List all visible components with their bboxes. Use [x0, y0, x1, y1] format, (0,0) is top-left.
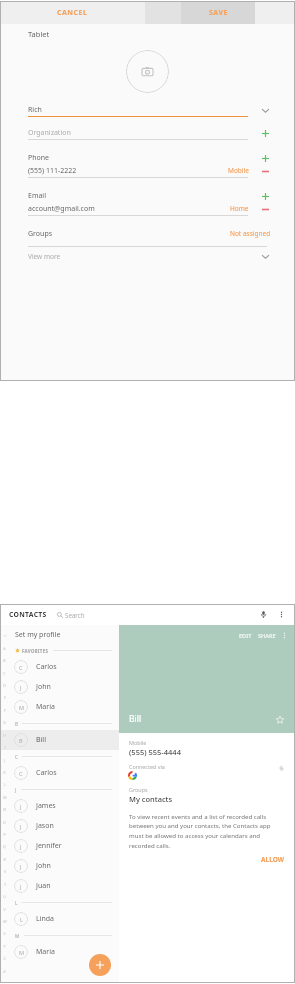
button[interactable]: C [0, 763, 119, 783]
button[interactable]: Set my profile [0, 625, 119, 644]
button[interactable]: Organization [0, 127, 295, 140]
button[interactable]: J [0, 816, 119, 836]
staticText: K [3, 770, 6, 775]
staticText: account@gmail.com [28, 204, 95, 214]
staticText: James [36, 801, 56, 811]
staticText: J [20, 843, 22, 850]
button[interactable]: Groups [119, 786, 295, 804]
button[interactable]: Add field [259, 152, 271, 164]
staticText: Linda [36, 914, 55, 924]
staticText: P [3, 832, 6, 837]
staticText: John [36, 682, 51, 692]
button[interactable]: Create contact [89, 954, 111, 976]
button[interactable]: Favorite [274, 714, 286, 726]
staticText: Connected via [129, 763, 165, 770]
button[interactable]: Connected via [119, 763, 295, 779]
staticText: EDIT [239, 632, 252, 640]
staticText: Tablet [28, 29, 50, 39]
button[interactable]: B [0, 730, 119, 750]
button[interactable]: J [0, 856, 119, 876]
button[interactable]: Expand [259, 104, 271, 116]
staticText: Carlos [36, 768, 57, 778]
button[interactable]: M [0, 697, 119, 717]
staticText: C [15, 754, 18, 760]
staticText: Juan [36, 881, 51, 891]
staticText: J [4, 758, 5, 763]
staticText: Phone [28, 153, 50, 163]
staticText: Set my profile [15, 630, 61, 640]
staticText: B [15, 721, 18, 727]
staticText: S [4, 869, 6, 874]
button[interactable]: SAVE [181, 1, 255, 24]
button[interactable]: C [0, 657, 119, 677]
button[interactable]: J [0, 876, 119, 896]
staticText: N [3, 807, 6, 812]
other: Linked contacts [276, 763, 287, 774]
button[interactable]: Remove field [259, 203, 271, 215]
staticText: E [4, 695, 6, 700]
staticText: Home [230, 204, 249, 213]
button[interactable]: View more [0, 247, 295, 265]
button[interactable]: J [0, 796, 119, 816]
staticText: D [3, 683, 6, 688]
button[interactable]: Add field [259, 190, 271, 202]
staticText: Organization [28, 128, 71, 138]
staticText: L [4, 782, 6, 787]
staticText: Q [3, 844, 6, 849]
staticText: View more [28, 252, 61, 261]
staticText: Email [28, 191, 46, 201]
staticText: C [3, 671, 6, 676]
staticText: M [19, 949, 24, 956]
button[interactable]: Groups [0, 225, 295, 242]
staticText: Y [3, 944, 6, 949]
staticText: J [20, 803, 22, 810]
staticText: CONTACTS [9, 610, 47, 619]
button[interactable]: EDIT [236, 632, 255, 640]
button[interactable]: L [0, 909, 119, 929]
staticText: J [20, 684, 22, 691]
button[interactable]: Rich [0, 104, 295, 117]
button[interactable]: account@gmail.com [0, 202, 295, 216]
staticText: H [3, 733, 6, 738]
button[interactable]: ALLOW [119, 855, 295, 864]
button[interactable]: More options [279, 630, 290, 641]
button[interactable]: Add field [259, 127, 271, 139]
staticText: O [3, 820, 6, 825]
button[interactable]: J [0, 836, 119, 856]
staticText: T [4, 882, 6, 887]
staticText: M [15, 933, 20, 939]
staticText: Carlos [36, 662, 57, 672]
staticText: # [3, 969, 6, 974]
staticText: SAVE [209, 8, 228, 18]
button[interactable]: CANCEL [0, 1, 145, 24]
button[interactable]: Expand [259, 250, 271, 262]
button[interactable]: Voice search [257, 608, 270, 621]
staticText: Rich [28, 105, 42, 115]
staticText: W [3, 919, 7, 924]
staticText: F [4, 708, 6, 713]
staticText: G [3, 720, 6, 725]
button[interactable]: J [0, 677, 119, 697]
staticText: Jason [36, 821, 54, 831]
staticText: B [19, 737, 23, 744]
staticText: J [15, 787, 17, 793]
button[interactable]: Add photo [126, 50, 169, 93]
staticText: M [3, 795, 7, 800]
staticText: B [3, 658, 6, 663]
staticText: Maria [36, 702, 55, 712]
button[interactable]: More options [275, 608, 288, 621]
button[interactable]: Remove field [259, 165, 271, 177]
staticText: Maria [36, 947, 55, 957]
staticText: J [20, 883, 22, 890]
staticText: Not assigned [230, 229, 271, 238]
staticText: Groups [129, 786, 148, 793]
button[interactable]: SHARE [255, 632, 279, 640]
button[interactable]: Mobile [119, 739, 295, 757]
staticText: A [3, 646, 6, 651]
staticText: M [19, 704, 24, 711]
button[interactable]: (555) 111-2222 [0, 164, 295, 178]
staticText: Bill [129, 713, 142, 725]
staticText: U [3, 894, 6, 899]
button[interactable]: M [0, 942, 119, 962]
staticText: ALLOW [261, 855, 284, 864]
